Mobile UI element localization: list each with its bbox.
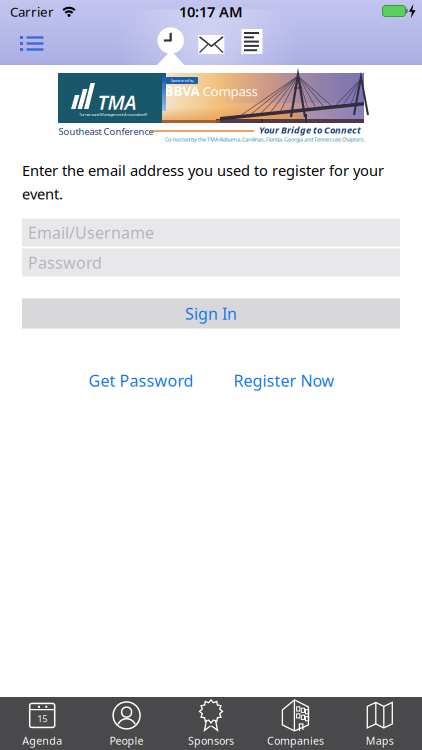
button[interactable]: Password xyxy=(22,248,400,276)
staticText: Southeast Conference xyxy=(58,125,153,138)
button[interactable]: People xyxy=(84,697,169,750)
staticText: TMA xyxy=(97,89,136,115)
staticText: Carrier xyxy=(10,3,54,20)
staticText: People xyxy=(110,733,144,748)
staticText: Enter the email address you used to regi… xyxy=(22,160,384,203)
button[interactable]: Menu xyxy=(11,25,51,61)
button[interactable]: Sponsors xyxy=(169,697,253,750)
button[interactable]: Recent xyxy=(157,27,184,54)
button[interactable]: Sign In xyxy=(22,298,400,328)
staticText: 10:17 AM xyxy=(179,2,243,21)
button[interactable]: Companies xyxy=(253,697,338,750)
staticText: 15 xyxy=(37,712,47,725)
staticText: Your Bridge to Connect xyxy=(259,124,361,136)
staticText: BBVA xyxy=(164,82,199,100)
staticText: Companies xyxy=(267,733,324,748)
staticText: Sponsored by xyxy=(170,78,193,83)
staticText: Turnaround Management Association® xyxy=(79,112,147,117)
staticText: Maps xyxy=(366,733,394,748)
staticText: Password xyxy=(28,252,102,273)
staticText: Sponsors xyxy=(188,733,234,748)
button[interactable]: Notes xyxy=(241,29,262,54)
button[interactable]: Messages xyxy=(198,35,224,54)
button[interactable]: Email/Username xyxy=(22,218,400,246)
button[interactable]: Register Now xyxy=(233,370,334,391)
staticText: Get Password xyxy=(88,370,193,391)
staticText: Email/Username xyxy=(28,222,154,243)
staticText: Sign In xyxy=(185,303,237,324)
staticText: Agenda xyxy=(22,733,62,748)
button[interactable]: Maps xyxy=(338,697,422,750)
staticText: Register Now xyxy=(233,370,334,391)
staticText: Compass xyxy=(202,82,257,100)
button[interactable]: Get Password xyxy=(88,370,193,391)
staticText: Co-hosted by the TMA Alabama, Carolinas,… xyxy=(165,136,365,143)
button[interactable]: 15 xyxy=(0,697,84,750)
